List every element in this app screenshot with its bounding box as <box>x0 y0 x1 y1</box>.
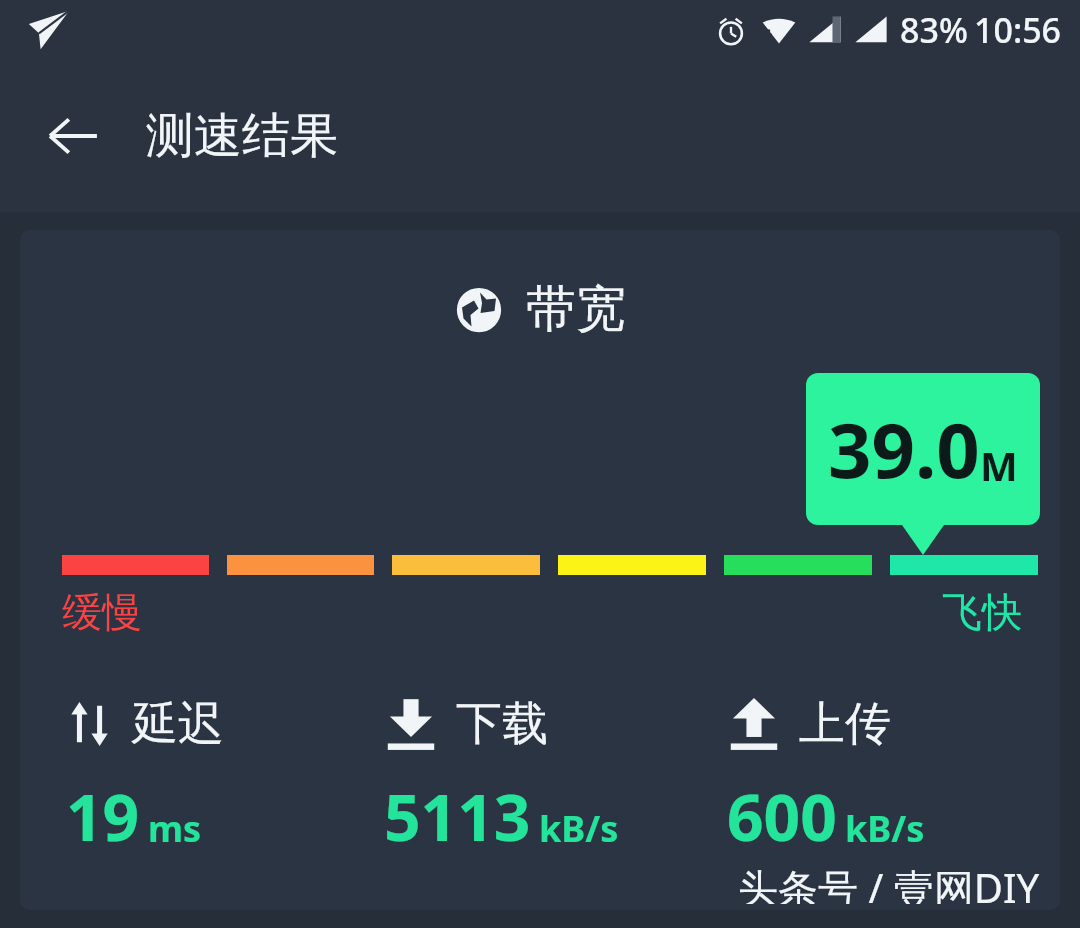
staticText: 上传 <box>799 695 891 753</box>
staticText: 带宽 <box>526 278 626 341</box>
staticText: 10:56 <box>974 7 1062 53</box>
staticText: 延迟 <box>132 695 224 753</box>
staticText: 缓慢 <box>62 587 142 637</box>
staticText: 飞快 <box>942 587 1022 637</box>
staticText: 下载 <box>456 695 548 753</box>
staticText: 19 <box>66 773 140 860</box>
staticText: 39.0 <box>828 397 980 501</box>
staticText: ms <box>148 804 202 853</box>
staticText: 600 <box>727 773 837 860</box>
staticText: kB/s <box>845 804 925 853</box>
staticText: 5113 <box>384 773 531 860</box>
staticText: 头条号 / 壹网DIY <box>738 860 1040 904</box>
staticText: 83% <box>900 7 968 53</box>
button[interactable]: Back <box>34 97 112 175</box>
staticText: M <box>980 438 1018 492</box>
staticText: kB/s <box>539 804 619 853</box>
staticText: 测速结果 <box>146 106 338 166</box>
